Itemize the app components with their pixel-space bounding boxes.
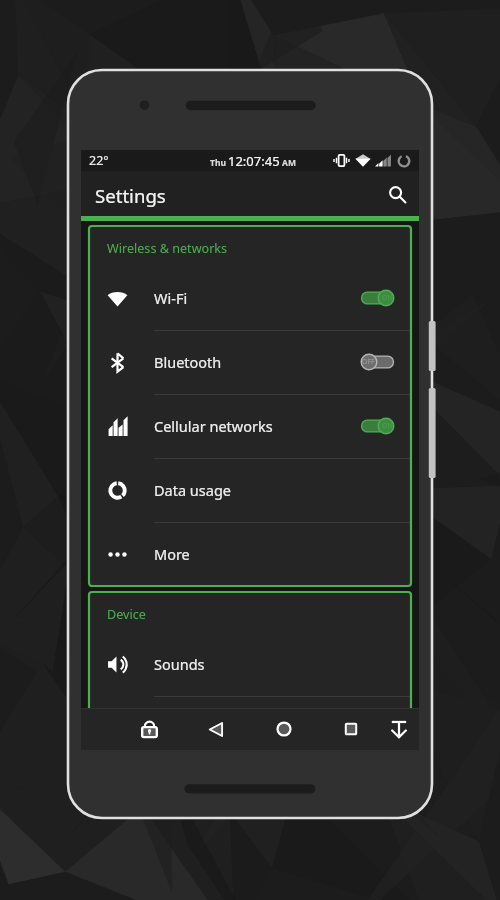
button[interactable]: Cellular networks toggle: [360, 415, 395, 437]
staticText: 12:07:45: [228, 152, 280, 170]
button[interactable]: Sounds: [89, 632, 411, 696]
button[interactable]: Hide navigation: [378, 708, 420, 750]
staticText: Thu: [210, 157, 226, 169]
button[interactable]: Wi-Fi: [89, 266, 411, 330]
button[interactable]: Home: [263, 708, 305, 750]
button[interactable]: Display: [89, 696, 411, 750]
staticText: Settings: [95, 183, 166, 208]
button[interactable]: Data usage: [89, 458, 411, 522]
button[interactable]: Search: [380, 177, 414, 211]
button[interactable]: Back: [195, 708, 237, 750]
button[interactable]: Recents: [330, 708, 372, 750]
staticText: ON: [382, 293, 393, 303]
staticText: Device: [107, 606, 146, 623]
button[interactable]: Cellular networks: [89, 394, 411, 458]
staticText: Wireless & networks: [107, 240, 228, 257]
staticText: Cellular networks: [154, 416, 273, 436]
staticText: More: [154, 544, 190, 564]
staticText: Display: [154, 713, 204, 733]
staticText: ON: [382, 421, 393, 431]
staticText: 22°: [89, 152, 109, 169]
staticText: AM: [282, 157, 296, 169]
staticText: OFF: [362, 357, 375, 367]
button[interactable]: Wi-Fi toggle: [360, 287, 395, 309]
button[interactable]: Bluetooth toggle: [360, 351, 395, 373]
staticText: Wi-Fi: [154, 288, 188, 308]
staticText: Bluetooth: [154, 352, 222, 372]
button[interactable]: Bluetooth: [89, 330, 411, 394]
button[interactable]: More: [89, 522, 411, 586]
staticText: Sounds: [154, 654, 205, 674]
staticText: Data usage: [154, 480, 231, 500]
button[interactable]: Lock: [128, 708, 170, 750]
